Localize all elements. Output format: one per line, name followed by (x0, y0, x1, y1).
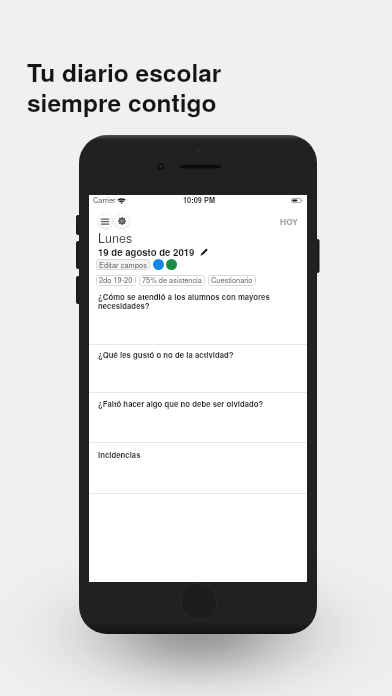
staticText: Lunes (98, 229, 133, 247)
button[interactable]: ¿Faltó hacer algo que no debe ser olvida… (89, 390, 307, 441)
button[interactable]: Settings (115, 214, 129, 228)
button[interactable]: Editar campos (96, 259, 150, 270)
button[interactable]: Menu (98, 214, 112, 228)
staticText: 19 de agosto de 2019 (98, 245, 195, 259)
button[interactable]: 2do 19-20 (96, 275, 136, 286)
staticText: Tu diario escolar siempre contigo (27, 54, 222, 119)
button[interactable]: 75% de asistencia (139, 275, 205, 286)
button[interactable]: Cuestionario (208, 275, 256, 286)
staticText: ¿Qué les gustó o no de la actividad? (98, 349, 278, 360)
button[interactable]: ¿Cómo se atendió a los alumnos con mayor… (89, 283, 307, 344)
button[interactable]: ¿Qué les gustó o no de la actividad? (89, 341, 307, 392)
button[interactable]: Blue label (153, 259, 164, 270)
button[interactable]: Incidencias (89, 441, 307, 493)
button[interactable]: Green label (166, 259, 177, 270)
staticText: ¿Cómo se atendió a los alumnos con mayor… (98, 291, 278, 311)
staticText: Carrier (93, 195, 116, 206)
staticText: HOY (280, 216, 299, 228)
staticText: Editar campos (99, 259, 147, 270)
staticText: ¿Faltó hacer algo que no debe ser olvida… (98, 398, 278, 409)
staticText: 2do 19-20 (99, 275, 133, 286)
staticText: Cuestionario (211, 275, 253, 286)
staticText: Incidencias (98, 449, 278, 460)
button[interactable]: Edit date (199, 247, 209, 257)
staticText: 10:09 PM (183, 195, 216, 206)
staticText: 75% de asistencia (142, 275, 202, 286)
